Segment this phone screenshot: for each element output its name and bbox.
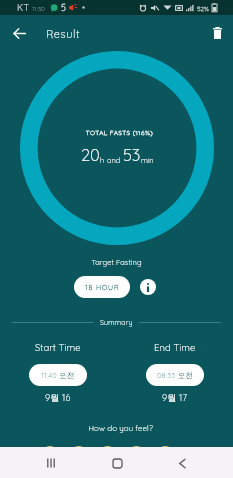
staticText: 20 <box>81 144 100 165</box>
button[interactable]: 11:40 오전 <box>29 364 87 386</box>
staticText: TOTAL FASTS (116%) <box>3 128 233 136</box>
staticText: min <box>141 155 154 164</box>
staticText: Target Fasting <box>0 257 233 266</box>
button[interactable]: Delete <box>205 21 229 45</box>
button[interactable]: 08:33 오전 <box>146 364 204 386</box>
staticText: 9월 16 <box>45 392 71 404</box>
button[interactable]: 18 HOUR <box>74 276 130 298</box>
button[interactable]: Back <box>7 21 31 45</box>
staticText: Summary <box>100 318 133 327</box>
button[interactable]: Recent apps <box>37 449 65 477</box>
staticText: End Time <box>154 341 196 353</box>
staticText: 52% <box>197 4 210 12</box>
staticText: 11:40 오전 <box>41 370 75 380</box>
staticText: h <box>100 155 105 164</box>
staticText: 9월 17 <box>162 392 188 404</box>
staticText: Start Time <box>35 341 81 353</box>
button[interactable]: Back <box>168 449 196 477</box>
button[interactable]: Home <box>103 449 131 477</box>
staticText: How do you feel? <box>4 423 233 433</box>
staticText: 18 HOUR <box>85 283 120 292</box>
staticText: 08:33 오전 <box>157 370 194 380</box>
staticText: 11:30 <box>32 4 45 12</box>
staticText: KT <box>17 2 30 13</box>
staticText: 53 <box>123 144 141 165</box>
staticText: and <box>105 155 123 164</box>
staticText: Result <box>46 27 81 41</box>
button[interactable]: Info <box>140 279 156 295</box>
staticText: 5 <box>61 2 66 13</box>
